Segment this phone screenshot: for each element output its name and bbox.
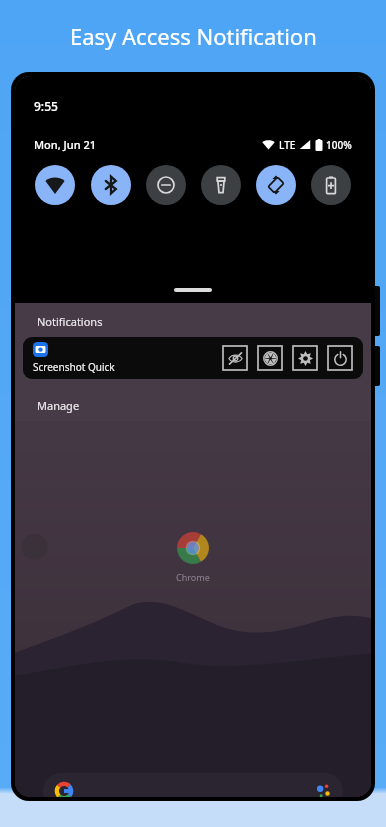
- button[interactable]: Capture screenshot: [257, 345, 283, 371]
- button[interactable]: Hide notification: [222, 345, 248, 371]
- button[interactable]: Flashlight: [201, 165, 241, 205]
- button[interactable]: Battery Saver: [311, 165, 351, 205]
- button[interactable]: Wi-Fi: [35, 165, 75, 205]
- button[interactable]: Settings: [292, 345, 318, 371]
- staticText: Screenshot Quick: [33, 360, 115, 374]
- button[interactable]: Screenshot Quick: [23, 337, 363, 379]
- staticText: Notifications: [37, 314, 103, 329]
- button[interactable]: Expand quick settings: [174, 288, 212, 292]
- button[interactable]: Bluetooth: [91, 165, 131, 205]
- staticText: 100%: [326, 138, 352, 152]
- staticText: Mon, Jun 21: [34, 137, 97, 152]
- staticText: Chrome: [176, 571, 210, 583]
- staticText: Manage: [37, 398, 80, 413]
- button[interactable]: Auto rotate: [256, 165, 296, 205]
- button[interactable]: Google Search: [43, 773, 343, 797]
- staticText: LTE: [279, 138, 296, 152]
- staticText: 9:55: [34, 98, 58, 114]
- button[interactable]: Chrome: [171, 526, 215, 586]
- staticText: Easy Access Notification: [70, 21, 317, 51]
- button[interactable]: Do Not Disturb: [146, 165, 186, 205]
- button[interactable]: Power: [327, 345, 353, 371]
- button[interactable]: Manage: [37, 398, 80, 413]
